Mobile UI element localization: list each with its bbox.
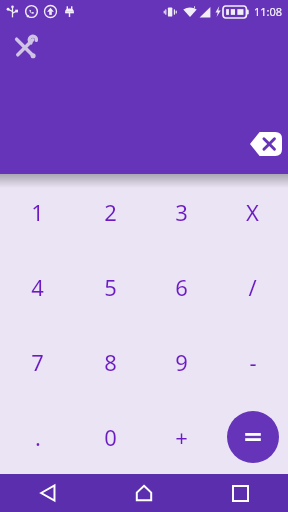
staticText: 4 — [31, 272, 44, 302]
staticText: 8 — [104, 347, 117, 377]
staticText: 6 — [175, 272, 188, 302]
staticText: + — [175, 422, 188, 452]
button[interactable]: Settings — [10, 32, 40, 62]
staticText: - — [249, 347, 257, 377]
button[interactable]: 2 — [75, 174, 146, 249]
button[interactable]: Backspace — [250, 132, 282, 156]
button[interactable]: Home — [96, 474, 192, 512]
button[interactable]: Back — [0, 474, 96, 512]
button[interactable]: 3 — [146, 174, 217, 249]
staticText: X — [246, 197, 259, 227]
button[interactable]: X — [217, 174, 288, 249]
staticText: 7 — [31, 347, 44, 377]
staticText: . — [35, 422, 41, 452]
button[interactable]: - — [217, 324, 288, 399]
button[interactable]: / — [217, 249, 288, 324]
staticText: 5 — [104, 272, 117, 302]
button[interactable]: 1 — [0, 174, 75, 249]
button[interactable]: 7 — [0, 324, 75, 399]
button[interactable]: + — [146, 399, 217, 474]
button[interactable]: 0 — [75, 399, 146, 474]
button[interactable] — [217, 399, 288, 474]
staticText: / — [248, 272, 257, 302]
button[interactable]: 5 — [75, 249, 146, 324]
button[interactable]: 9 — [146, 324, 217, 399]
staticText: 1 — [31, 197, 44, 227]
staticText: 3 — [175, 197, 188, 227]
button[interactable]: 4 — [0, 249, 75, 324]
staticText: 0 — [104, 422, 117, 452]
button[interactable]: 6 — [146, 249, 217, 324]
button[interactable]: Recents — [192, 474, 288, 512]
button[interactable]: 8 — [75, 324, 146, 399]
button[interactable]: . — [0, 399, 75, 474]
staticText: 11:08 — [254, 4, 283, 19]
staticText: 9 — [175, 347, 188, 377]
staticText: 2 — [104, 197, 117, 227]
